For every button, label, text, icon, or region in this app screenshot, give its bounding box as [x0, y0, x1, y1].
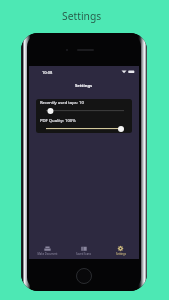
staticText: Settings	[116, 252, 126, 256]
staticText: PDF Quality: 100%	[40, 118, 76, 124]
button[interactable]	[46, 125, 124, 133]
button[interactable]: Settings	[102, 242, 139, 259]
staticText: Make Document	[37, 252, 58, 256]
button[interactable]: Make Document	[29, 242, 65, 259]
staticText: Saved Scans	[76, 252, 91, 256]
staticText: Settings	[62, 9, 102, 23]
staticText: Recently used taps: 10	[40, 100, 84, 106]
button[interactable]: Recently used taps: 10	[36, 99, 132, 133]
button[interactable]: Saved Scans	[65, 242, 102, 259]
staticText: Settings	[75, 83, 93, 89]
staticText: 10:08	[42, 70, 53, 75]
button[interactable]	[46, 107, 124, 115]
